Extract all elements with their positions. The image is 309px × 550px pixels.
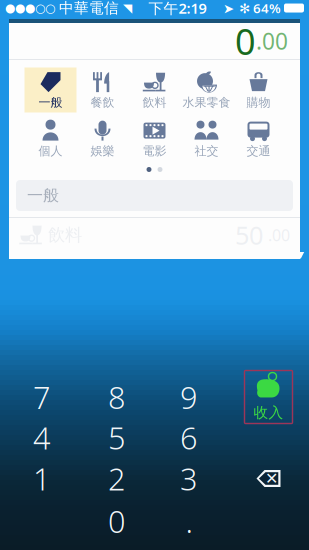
staticText: .00: [256, 26, 288, 56]
button[interactable]: 娛樂: [76, 116, 128, 161]
staticText: 飲料: [48, 224, 82, 246]
staticText: .: [185, 501, 192, 541]
staticText: ●●●○○: [5, 1, 55, 15]
button[interactable]: 社交: [180, 116, 232, 161]
button[interactable]: 一般: [24, 67, 76, 112]
button[interactable]: 飲料: [128, 67, 180, 112]
staticText: 0: [108, 501, 126, 541]
button[interactable]: 2: [84, 458, 150, 499]
staticText: 9: [180, 377, 198, 417]
staticText: .00: [268, 224, 290, 246]
staticText: 個人: [38, 144, 62, 158]
staticText: 水果零食: [182, 95, 230, 110]
button[interactable]: 6: [150, 417, 228, 458]
staticText: 3: [180, 458, 198, 499]
staticText: ➤ ✻ 64%: [223, 0, 281, 17]
button[interactable]: 3: [150, 458, 228, 499]
staticText: 50: [235, 218, 263, 252]
button[interactable]: 5: [84, 417, 150, 458]
staticText: 1: [33, 458, 51, 499]
staticText: 4: [33, 417, 51, 458]
staticText: 下午2:19: [148, 0, 206, 18]
staticText: 社交: [194, 144, 218, 158]
button[interactable]: 4: [0, 417, 84, 458]
staticText: 購物: [246, 95, 270, 110]
button[interactable]: 水果零食: [180, 67, 232, 112]
button[interactable]: .: [150, 500, 228, 541]
staticText: ◥: [123, 1, 132, 15]
staticText: 2: [108, 458, 126, 499]
staticText: 一般: [38, 95, 62, 110]
staticText: 7: [33, 377, 51, 417]
button[interactable]: 電影: [128, 116, 180, 161]
staticText: 8: [108, 377, 126, 417]
staticText: 交通: [246, 144, 270, 158]
button[interactable]: 收入: [228, 377, 309, 417]
staticText: 收入: [253, 403, 283, 421]
button[interactable]: 個人: [24, 116, 76, 161]
staticText: 餐飲: [90, 95, 114, 110]
staticText: 5: [108, 417, 126, 458]
staticText: 電影: [142, 144, 166, 158]
staticText: 娛樂: [90, 144, 114, 158]
button[interactable]: 9: [150, 376, 228, 417]
button[interactable]: 8: [84, 376, 150, 417]
button[interactable]: 購物: [232, 67, 284, 112]
button[interactable]: 交通: [232, 116, 284, 161]
staticText: 飲料: [142, 95, 166, 110]
button[interactable]: 1: [0, 458, 84, 499]
button[interactable]: Backspace: [228, 458, 309, 499]
button[interactable]: 0: [84, 500, 150, 541]
staticText: ✕: [265, 469, 278, 488]
button[interactable]: 7: [0, 376, 84, 417]
button[interactable]: 餐飲: [76, 67, 128, 112]
staticText: 一般: [27, 186, 59, 205]
staticText: 6: [180, 417, 198, 458]
staticText: 0: [235, 17, 256, 65]
staticText: 中華電信: [55, 0, 123, 17]
